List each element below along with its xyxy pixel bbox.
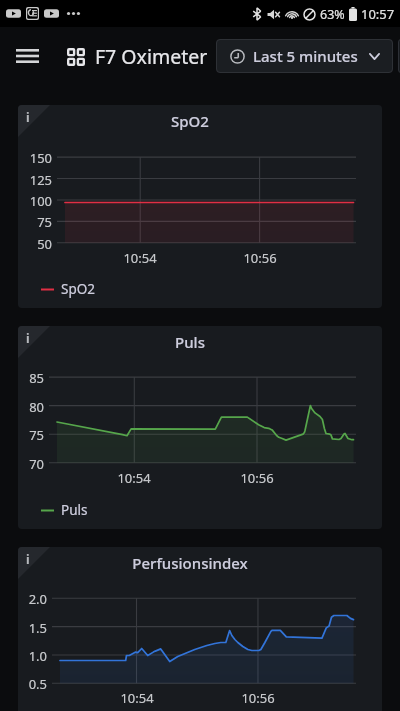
staticText: i [26,330,30,346]
button[interactable]: Zoom out time range [398,39,400,73]
staticText: 10:54 [120,249,160,267]
staticText: 150 [18,149,52,167]
staticText: 10:56 [237,469,277,487]
staticText: 10:56 [240,249,280,267]
button[interactable]: Panel description [18,105,382,308]
staticText: 10:57 [361,5,395,23]
staticText: Puls [61,501,88,519]
staticText: 2.0 [18,590,47,608]
staticText: 63% [320,6,345,23]
staticText: 10:56 [238,689,278,707]
staticText: 125 [18,171,52,189]
button[interactable]: F7 Oximeter [67,37,208,76]
staticText: 10:54 [114,469,154,487]
staticText: 80 [18,398,44,416]
staticText: 1.5 [18,619,47,637]
button[interactable]: Puls [41,501,88,519]
staticText: 50 [18,235,52,253]
button[interactable]: SpO2 [41,280,95,298]
button[interactable]: Panel description [18,105,40,127]
staticText: 75 [18,213,52,231]
staticText: SpO2 [61,280,95,298]
button[interactable]: Panel description [18,326,382,529]
staticText: SpO2 [40,111,340,131]
staticText: 70 [18,455,44,473]
staticText: 85 [18,369,44,387]
button[interactable]: Open navigation menu [8,37,47,76]
staticText: 75 [18,426,44,444]
staticText: Perfusionsindex [40,553,340,573]
button[interactable]: Last 5 minutes [216,39,393,73]
staticText: i [26,551,30,567]
staticText: 0.5 [18,675,47,693]
staticText: i [26,109,30,125]
staticText: Puls [40,332,340,352]
staticText: 10:54 [117,689,157,707]
button[interactable]: Panel description [18,547,382,711]
staticText: Last 5 minutes [253,46,358,66]
button[interactable]: Panel description [18,547,40,569]
staticText: F7 Oximeter [95,43,208,70]
button[interactable]: Panel description [18,326,40,348]
staticText: 100 [18,192,52,210]
staticText: 1.0 [18,647,47,665]
